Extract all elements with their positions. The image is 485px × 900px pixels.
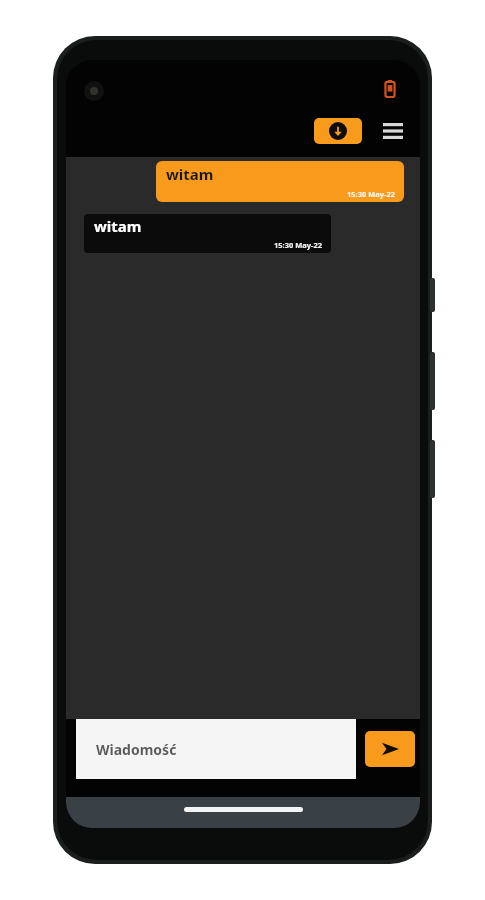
button[interactable]: Wiadomość	[76, 719, 356, 779]
staticText: witam	[94, 216, 142, 236]
button[interactable]: witam	[156, 161, 404, 202]
button[interactable]: Download	[314, 118, 362, 144]
button[interactable]: witam	[84, 214, 331, 253]
staticText: 15:30 May-22	[274, 240, 323, 250]
staticText: Wiadomość	[96, 740, 177, 759]
staticText: witam	[166, 164, 214, 184]
staticText: 15:30 May-22	[347, 189, 396, 199]
button[interactable]: Send	[365, 731, 415, 767]
button[interactable]: Menu	[378, 116, 408, 146]
